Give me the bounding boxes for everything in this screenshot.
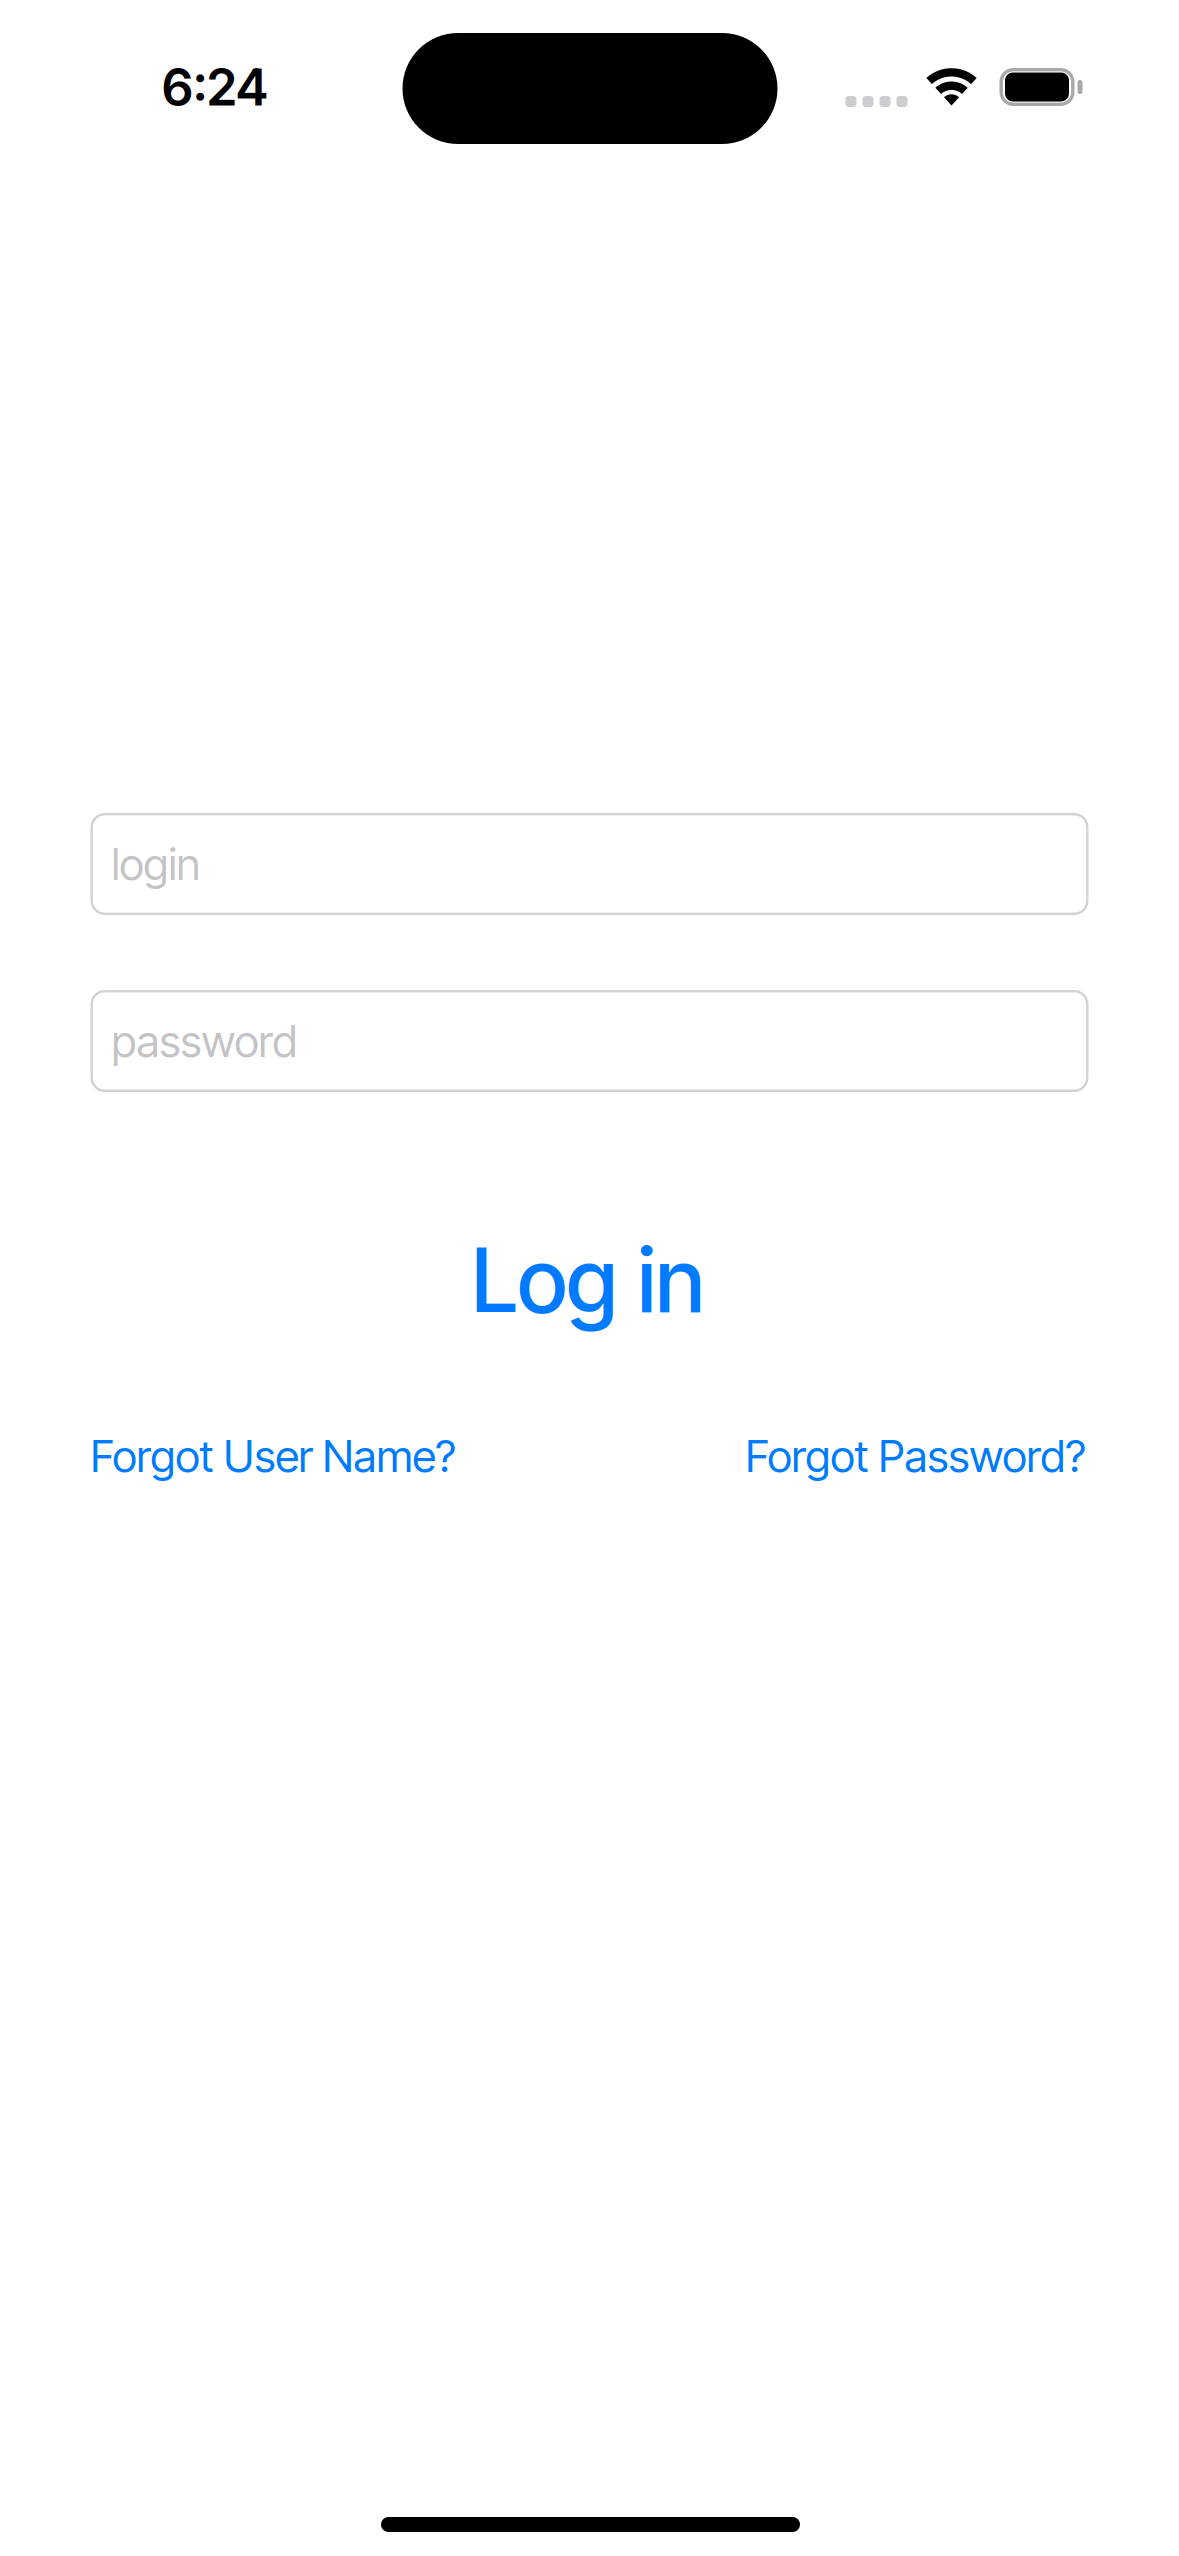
staticText: Forgot User Name? [90,1429,455,1483]
staticText: Forgot Password? [745,1429,1085,1483]
staticText: password [111,1014,297,1068]
button[interactable]: password [90,990,1088,1092]
staticText: 6:24 [162,56,268,118]
button[interactable]: login [90,813,1088,915]
staticText: Log in [471,1227,704,1333]
button[interactable]: Log in [471,1227,704,1333]
button[interactable]: Forgot Password? [745,1429,1085,1483]
staticText: login [111,837,200,891]
button[interactable]: Forgot User Name? [90,1429,455,1483]
